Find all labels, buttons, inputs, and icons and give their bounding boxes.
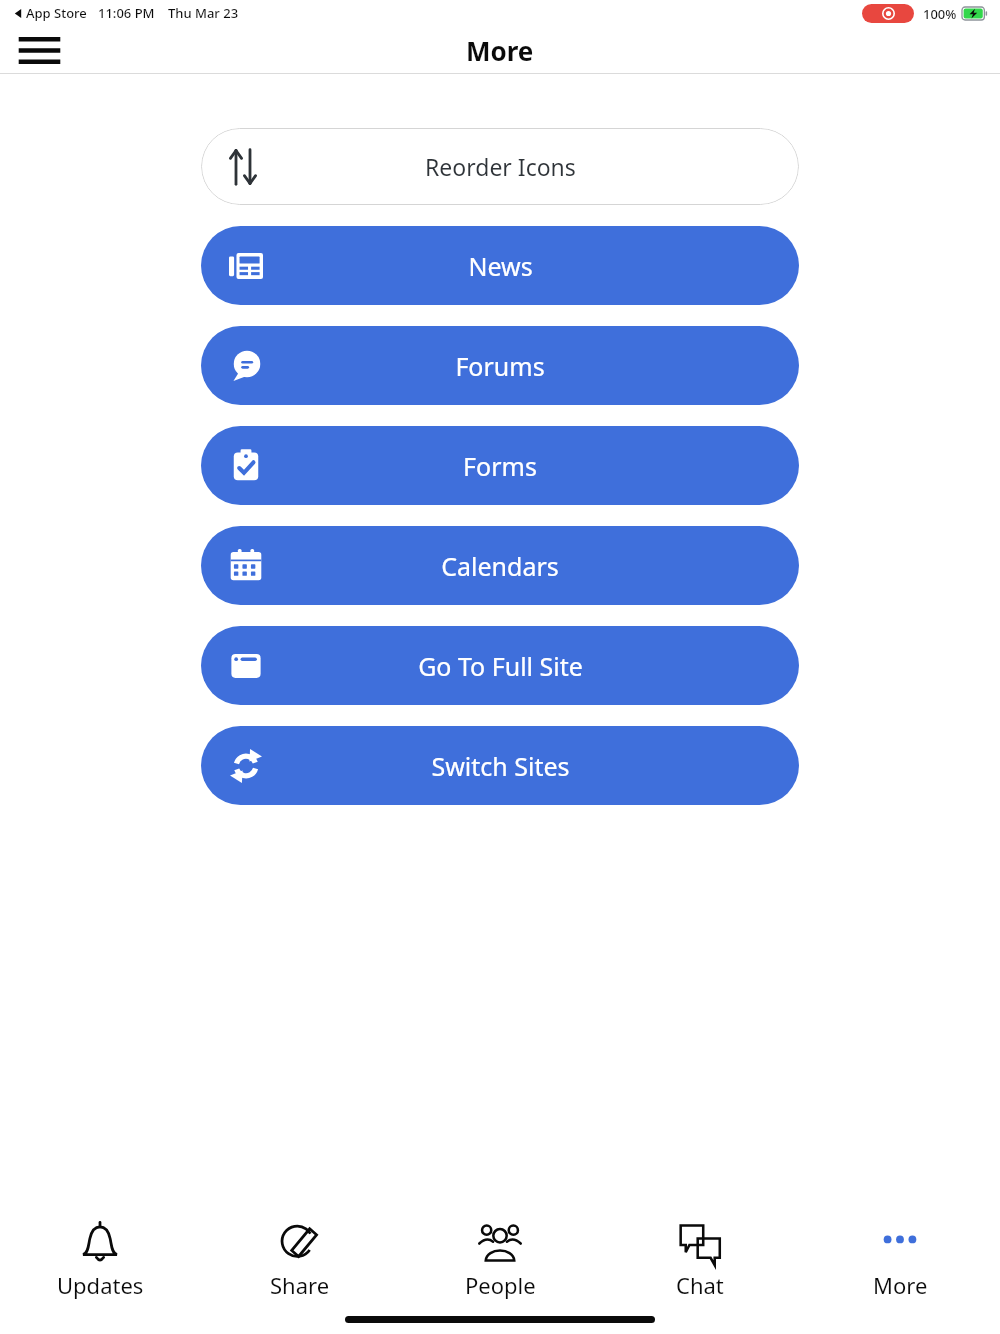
button[interactable]: Reorder Icons: [201, 128, 799, 205]
button[interactable]: Open navigation menu: [14, 26, 64, 74]
staticText: Share: [270, 1270, 330, 1300]
button[interactable]: More: [800, 1216, 1000, 1304]
staticText: Updates: [57, 1270, 144, 1300]
button[interactable]: Switch Sites: [201, 726, 799, 805]
button[interactable]: Forums: [201, 326, 799, 405]
staticText: Chat: [676, 1270, 724, 1300]
staticText: More: [873, 1270, 928, 1300]
staticText: Go To Full Site: [418, 649, 583, 683]
staticText: 100%: [923, 5, 957, 23]
staticText: People: [465, 1270, 536, 1300]
staticText: App Store: [26, 4, 87, 22]
button[interactable]: Forms: [201, 426, 799, 505]
button[interactable]: Go To Full Site: [201, 626, 799, 705]
button[interactable]: Calendars: [201, 526, 799, 605]
staticText: Forms: [463, 449, 537, 483]
other: Recording: [862, 4, 914, 23]
staticText: Switch Sites: [431, 749, 570, 783]
staticText: More: [466, 33, 534, 68]
staticText: Thu Mar 23: [168, 4, 239, 22]
staticText: 11:06 PM: [98, 4, 155, 22]
button[interactable]: Share: [200, 1216, 400, 1304]
button[interactable]: News: [201, 226, 799, 305]
button[interactable]: People: [400, 1216, 600, 1304]
staticText: News: [468, 249, 533, 283]
staticText: Forums: [455, 349, 545, 383]
staticText: Calendars: [441, 549, 559, 583]
button[interactable]: Updates: [0, 1216, 200, 1304]
staticText: Reorder Icons: [425, 151, 576, 182]
button[interactable]: Chat: [600, 1216, 800, 1304]
